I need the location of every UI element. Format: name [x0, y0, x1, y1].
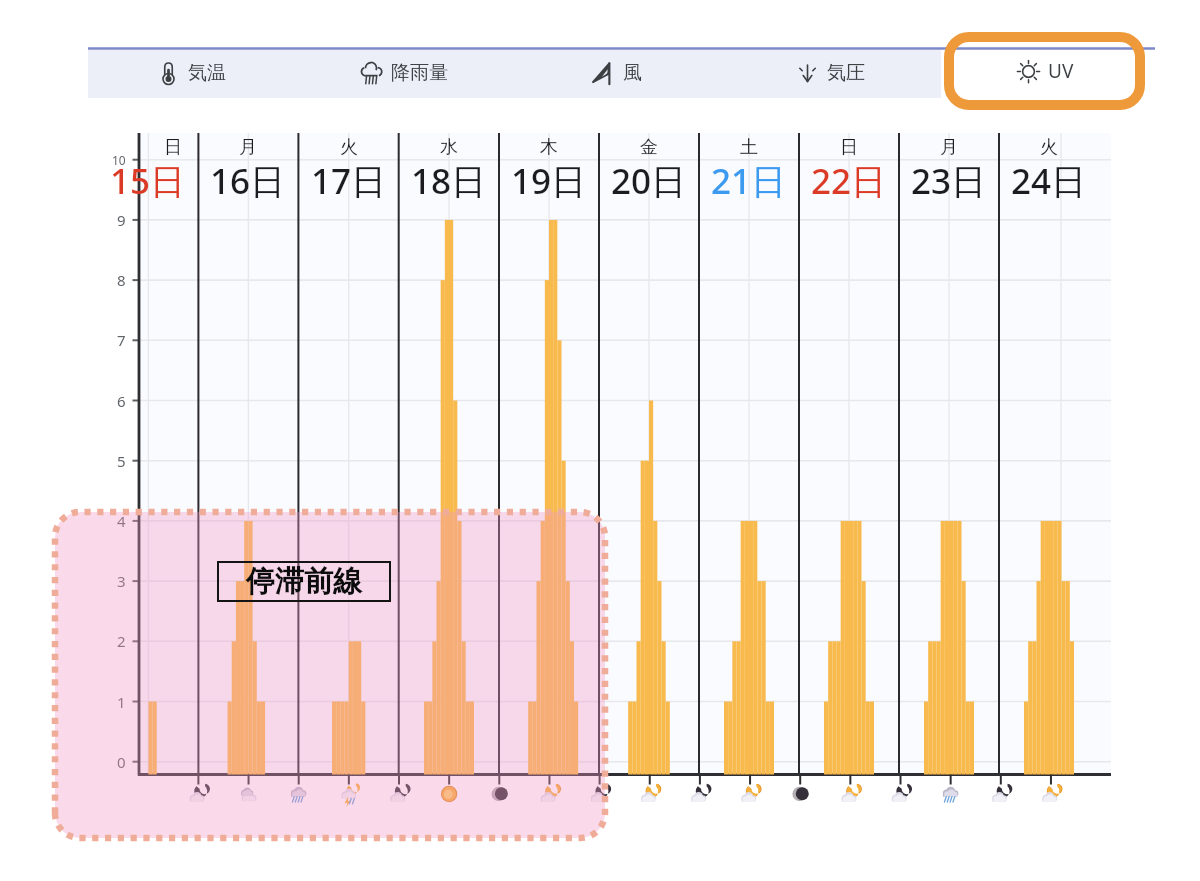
- staticText: UV: [1048, 58, 1074, 84]
- staticText: 17日: [311, 157, 387, 205]
- staticText: 3: [117, 571, 126, 591]
- button[interactable]: 風: [510, 47, 723, 98]
- staticText: 木: [540, 136, 558, 159]
- staticText: 気温: [188, 61, 226, 85]
- staticText: 20日: [611, 157, 687, 205]
- staticText: 7: [117, 330, 126, 350]
- staticText: 24日: [1011, 157, 1087, 205]
- staticText: 風: [623, 61, 642, 85]
- staticText: 19日: [511, 157, 587, 205]
- staticText: 水: [440, 136, 458, 159]
- staticText: 21日: [711, 157, 787, 205]
- staticText: 金: [640, 136, 658, 159]
- staticText: 16日: [210, 157, 286, 205]
- button[interactable]: 気圧: [723, 47, 936, 98]
- staticText: 4: [117, 511, 126, 531]
- staticText: 6: [117, 391, 126, 411]
- staticText: 日: [840, 136, 858, 159]
- staticText: 月: [239, 136, 257, 159]
- staticText: 10: [112, 152, 126, 168]
- button[interactable]: 降雨量: [297, 47, 510, 98]
- button[interactable]: UV tab: [944, 32, 1145, 110]
- staticText: 18日: [411, 157, 487, 205]
- staticText: 23日: [911, 157, 987, 205]
- staticText: 土: [740, 136, 758, 159]
- staticText: 5: [117, 451, 126, 471]
- staticText: 火: [340, 136, 358, 159]
- staticText: 気圧: [827, 61, 865, 85]
- staticText: 8: [117, 270, 126, 290]
- staticText: 9: [117, 210, 126, 230]
- button[interactable]: 気温: [84, 47, 297, 98]
- staticText: 15日: [110, 157, 186, 205]
- staticText: 日: [164, 136, 182, 159]
- staticText: 2: [117, 631, 126, 651]
- staticText: 降雨量: [391, 61, 448, 85]
- staticText: 0: [117, 752, 126, 772]
- staticText: 22日: [811, 157, 887, 205]
- staticText: 1: [117, 692, 126, 712]
- staticText: 月: [940, 136, 958, 159]
- staticText: 火: [1040, 136, 1058, 159]
- staticText: 停滞前線: [246, 563, 362, 600]
